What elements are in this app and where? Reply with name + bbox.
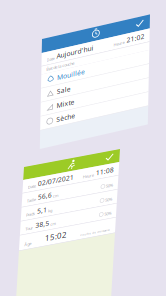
button[interactable]: Mixte (0, 63, 108, 77)
button[interactable]: Taille (0, 26, 96, 40)
button[interactable]: Mouillée (0, 35, 108, 49)
staticText: 50% (83, 46, 91, 52)
staticText: Courbe de croissance (61, 78, 91, 81)
button[interactable]: Sale (0, 49, 108, 63)
staticText: 15:02 (25, 71, 47, 81)
button[interactable]: Sèche (0, 77, 108, 91)
staticText: Mouillée (16, 38, 44, 47)
button[interactable]: Tour (0, 54, 96, 68)
button[interactable]: Poids (0, 40, 96, 54)
